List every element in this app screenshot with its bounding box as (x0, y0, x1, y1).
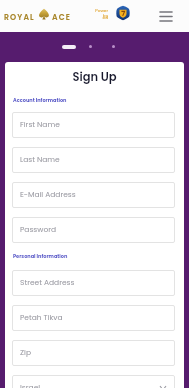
staticText: Petah Tikva (20, 312, 63, 322)
button[interactable]: E-Mail Address (12, 182, 175, 208)
staticText: Street Address (20, 277, 75, 287)
staticText: Israel (20, 382, 41, 388)
staticText: Password (20, 224, 57, 234)
staticText: ROYAL (4, 12, 35, 23)
button[interactable]: Israel (12, 375, 175, 388)
staticText: First Name (20, 119, 60, 129)
staticText: Sign Up (5, 69, 184, 85)
button[interactable] (89, 45, 92, 48)
button[interactable] (112, 45, 115, 48)
staticText: Personal Information (13, 253, 68, 260)
button[interactable]: Powered (93, 3, 133, 29)
staticText: Zip (20, 347, 31, 357)
button[interactable]: Petah Tikva (12, 305, 175, 331)
staticText: Account Information (13, 97, 67, 104)
staticText: ACE (52, 12, 72, 23)
staticText: Last Name (20, 154, 60, 164)
button[interactable]: Password (12, 217, 175, 243)
button[interactable] (62, 45, 76, 49)
button[interactable]: First Name (12, 112, 175, 138)
button[interactable]: Street Address (12, 270, 175, 296)
staticText: E-Mail Address (20, 189, 76, 199)
button[interactable]: Zip (12, 340, 175, 366)
button[interactable]: ROYAL (4, 6, 76, 28)
button[interactable]: Last Name (12, 147, 175, 173)
staticText: by (93, 13, 108, 19)
staticText: Powered (93, 8, 108, 20)
button[interactable]: Menu (156, 6, 176, 26)
